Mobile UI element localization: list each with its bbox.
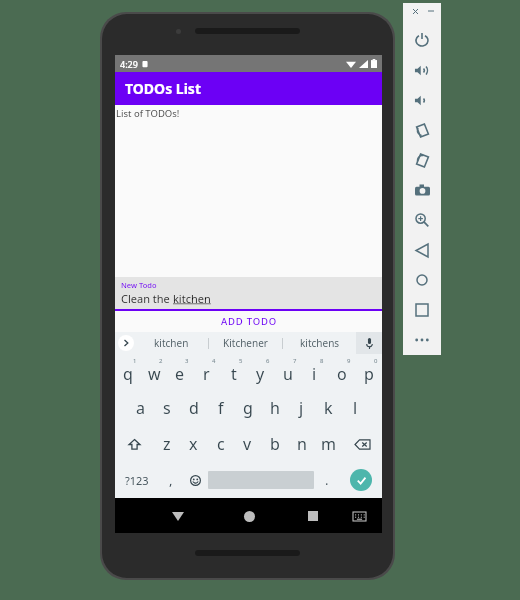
button[interactable]: More xyxy=(403,325,441,355)
button[interactable]: Home xyxy=(236,503,262,529)
staticText: j xyxy=(299,397,304,419)
staticText: w xyxy=(148,363,161,385)
button[interactable]: y xyxy=(247,354,274,390)
staticText: 4 xyxy=(212,357,216,365)
button[interactable]: kitchens xyxy=(283,332,356,354)
button[interactable]: Voice input xyxy=(356,332,382,354)
button[interactable]: Enter xyxy=(350,469,372,491)
button[interactable]: Rotate right xyxy=(403,145,441,175)
staticText: v xyxy=(243,433,252,455)
button[interactable]: t xyxy=(220,354,247,390)
staticText: TODOs List xyxy=(125,79,201,98)
button[interactable]: Expand suggestions xyxy=(118,335,134,351)
staticText: s xyxy=(163,397,171,419)
button[interactable]: Minimize xyxy=(426,6,436,16)
button[interactable]: h xyxy=(261,390,288,426)
button[interactable]: v xyxy=(234,426,261,462)
button[interactable]: Screenshot xyxy=(403,175,441,205)
button[interactable]: Volume up xyxy=(403,55,441,85)
button[interactable]: i xyxy=(301,354,328,390)
button[interactable]: p xyxy=(355,354,382,390)
button[interactable]: q xyxy=(115,354,141,390)
button[interactable]: Backspace xyxy=(342,426,382,462)
button[interactable]: TODOs List xyxy=(115,72,382,105)
staticText: Kitchener xyxy=(223,336,268,350)
button[interactable]: j xyxy=(288,390,315,426)
button[interactable]: d xyxy=(180,390,207,426)
button[interactable]: m xyxy=(315,426,342,462)
staticText: 7 xyxy=(293,357,297,365)
button[interactable]: Emoji xyxy=(183,462,208,498)
button[interactable]: ADD TODO xyxy=(115,311,382,332)
staticText: k xyxy=(324,397,333,419)
button[interactable]: Overview xyxy=(300,503,326,529)
staticText: t xyxy=(231,363,237,385)
button[interactable]: ?123 xyxy=(115,462,158,498)
button[interactable]: a xyxy=(127,390,153,426)
button[interactable]: Close xyxy=(410,6,420,16)
button[interactable]: Overview xyxy=(403,295,441,325)
staticText: r xyxy=(203,363,210,385)
button[interactable]: Kitchener xyxy=(209,332,282,354)
button[interactable]: k xyxy=(315,390,342,426)
staticText: b xyxy=(270,433,280,455)
button[interactable]: Hide keyboard xyxy=(165,503,191,529)
staticText: , xyxy=(169,471,173,489)
staticText: 5 xyxy=(239,357,243,365)
staticText: n xyxy=(297,433,307,455)
button[interactable]: New Todo xyxy=(115,277,382,311)
staticText: 9 xyxy=(347,357,351,365)
staticText: 0 xyxy=(374,357,378,365)
button[interactable]: u xyxy=(274,354,301,390)
staticText: 8 xyxy=(320,357,324,365)
staticText: Clean the xyxy=(121,291,173,306)
staticText: New Todo xyxy=(121,280,157,290)
button[interactable]: e xyxy=(167,354,193,390)
button[interactable]: r xyxy=(193,354,220,390)
staticText: d xyxy=(189,397,199,419)
button[interactable]: kitchen xyxy=(134,332,208,354)
button[interactable]: . xyxy=(314,462,339,498)
staticText: 4:29 xyxy=(120,58,138,70)
button[interactable]: f xyxy=(207,390,234,426)
button[interactable]: Back xyxy=(403,235,441,265)
button[interactable]: Shift xyxy=(115,426,154,462)
staticText: i xyxy=(312,363,317,385)
staticText: kitchen xyxy=(173,291,211,306)
staticText: o xyxy=(337,363,347,385)
button[interactable]: s xyxy=(153,390,180,426)
staticText: p xyxy=(364,363,374,385)
staticText: e xyxy=(175,363,185,385)
button[interactable]: l xyxy=(342,390,369,426)
staticText: h xyxy=(270,397,280,419)
button[interactable]: w xyxy=(141,354,167,390)
button[interactable]: Zoom xyxy=(403,205,441,235)
staticText: f xyxy=(218,397,224,419)
button[interactable]: g xyxy=(234,390,261,426)
button[interactable]: Rotate left xyxy=(403,115,441,145)
staticText: 2 xyxy=(159,357,163,365)
staticText: z xyxy=(163,433,171,455)
button[interactable]: n xyxy=(288,426,315,462)
staticText: c xyxy=(217,433,225,455)
staticText: . xyxy=(325,471,329,489)
button[interactable]: Home xyxy=(403,265,441,295)
button[interactable]: , xyxy=(158,462,183,498)
staticText: g xyxy=(243,397,253,419)
staticText: kitchens xyxy=(300,336,340,350)
button[interactable]: b xyxy=(261,426,288,462)
staticText: 1 xyxy=(133,357,137,365)
button[interactable]: x xyxy=(180,426,207,462)
staticText: List of TODOs! xyxy=(116,107,180,120)
staticText: ADD TODO xyxy=(221,315,277,328)
button[interactable]: o xyxy=(328,354,355,390)
staticText: 3 xyxy=(185,357,189,365)
button[interactable]: Volume down xyxy=(403,85,441,115)
button[interactable]: z xyxy=(154,426,180,462)
button[interactable]: Switch keyboard xyxy=(348,505,370,527)
button[interactable]: Power xyxy=(403,25,441,55)
button[interactable]: c xyxy=(207,426,234,462)
staticText: m xyxy=(321,433,336,455)
staticText: u xyxy=(283,363,293,385)
